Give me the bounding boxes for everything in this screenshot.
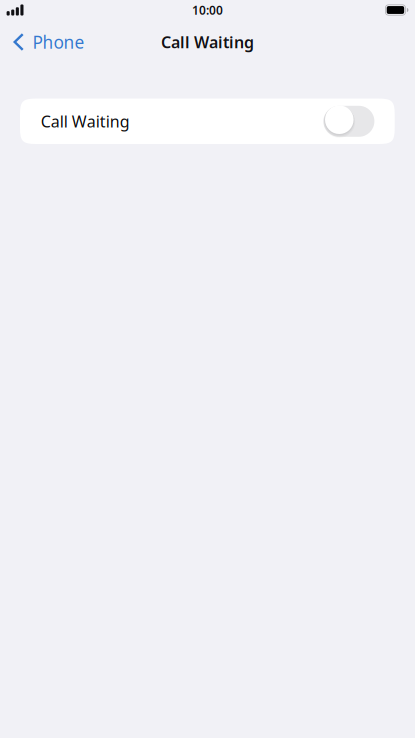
staticText: Call Waiting <box>41 111 130 132</box>
button[interactable]: Phone <box>0 20 92 64</box>
staticText: Call Waiting <box>161 31 254 53</box>
staticText: Phone <box>32 30 84 53</box>
staticText: 10:00 <box>192 2 223 18</box>
button[interactable]: Call Waiting <box>20 99 395 144</box>
